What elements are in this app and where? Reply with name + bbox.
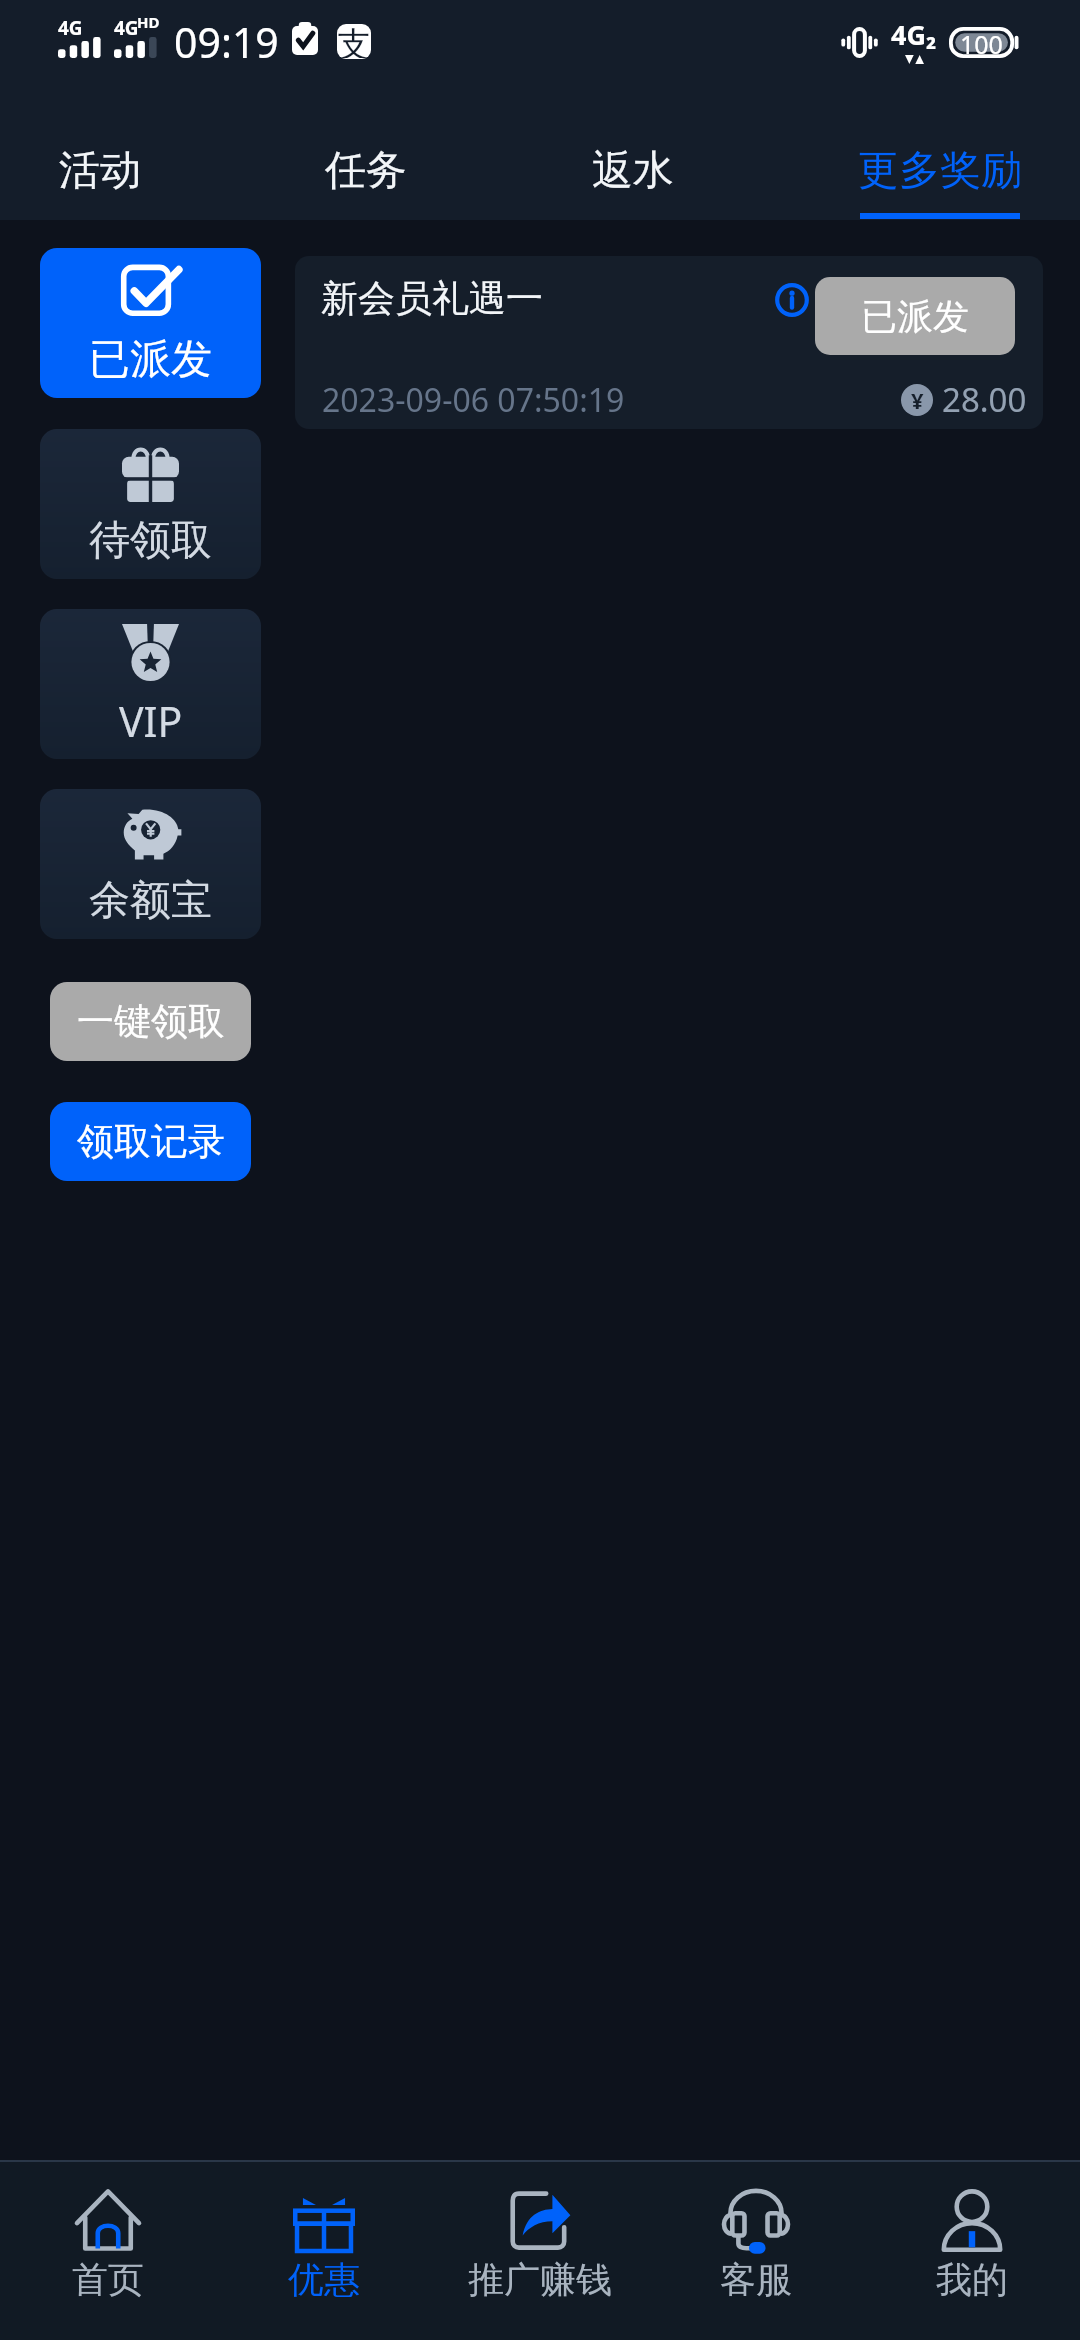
button[interactable]: VIP <box>40 609 261 759</box>
staticText: 我的 <box>936 2257 1008 2302</box>
button[interactable]: 返水 <box>558 110 708 220</box>
button[interactable]: 任务 <box>291 110 441 220</box>
button[interactable]: 推广赚钱 <box>432 2162 648 2340</box>
button[interactable]: 客服 <box>648 2162 864 2340</box>
button[interactable]: 我的 <box>864 2162 1080 2340</box>
button[interactable]: 首页 <box>0 2162 216 2340</box>
staticText: ¥ <box>911 385 924 415</box>
staticText: 领取记录 <box>77 1118 225 1165</box>
button[interactable]: 新会员礼遇一 <box>295 256 1043 429</box>
button[interactable]: 活动 <box>25 110 175 220</box>
staticText: 客服 <box>720 2257 792 2302</box>
staticText: 活动 <box>59 145 141 197</box>
staticText: 支 <box>337 24 371 58</box>
staticText: VIP <box>119 693 183 749</box>
staticText: 09:19 <box>174 14 279 70</box>
button[interactable]: 已派发 <box>40 248 261 398</box>
staticText: 2023-09-06 07:50:19 <box>322 378 625 422</box>
staticText: 4G <box>58 15 83 41</box>
button[interactable]: 已派发 <box>815 277 1015 355</box>
button[interactable]: 领取记录 <box>50 1102 251 1181</box>
staticText: 任务 <box>325 145 407 197</box>
staticText: 已派发 <box>89 334 212 386</box>
staticText: 一键领取 <box>77 998 225 1045</box>
button[interactable]: 一键领取 <box>50 982 251 1061</box>
staticText: 优惠 <box>288 2257 360 2302</box>
staticText: 100 <box>960 27 1003 58</box>
staticText: 已派发 <box>861 294 969 339</box>
button[interactable]: 待领取 <box>40 429 261 579</box>
staticText: 更多奖励 <box>858 145 1022 197</box>
staticText: 新会员礼遇一 <box>321 275 543 322</box>
staticText: 4G₂ <box>891 16 937 53</box>
staticText: 推广赚钱 <box>468 2257 612 2302</box>
staticText: HD <box>137 12 160 32</box>
staticText: 待领取 <box>89 515 212 567</box>
staticText: 28.00 <box>942 377 1027 422</box>
button[interactable]: 余额宝 <box>40 789 261 939</box>
staticText: 余额宝 <box>89 875 212 927</box>
button[interactable]: 更多奖励 <box>840 110 1040 220</box>
staticText: 返水 <box>592 145 674 197</box>
staticText: 首页 <box>72 2257 144 2302</box>
staticText: 4G <box>114 15 139 41</box>
button[interactable]: 优惠 <box>216 2162 432 2340</box>
button[interactable]: Info <box>774 282 810 318</box>
